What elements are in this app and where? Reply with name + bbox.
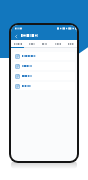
button[interactable]: Document xyxy=(13,82,75,90)
other: Document xyxy=(15,64,20,69)
button[interactable] xyxy=(51,40,64,47)
button[interactable] xyxy=(25,40,38,47)
other: Document xyxy=(15,84,20,89)
button[interactable]: Document xyxy=(13,62,75,70)
button[interactable] xyxy=(11,40,25,47)
button[interactable]: Document xyxy=(13,52,75,60)
button[interactable]: Document xyxy=(13,72,75,80)
button[interactable] xyxy=(38,40,51,47)
other: Document xyxy=(15,74,20,79)
button[interactable]: Back xyxy=(12,32,20,40)
button[interactable] xyxy=(64,40,77,47)
other: Document xyxy=(15,54,20,59)
